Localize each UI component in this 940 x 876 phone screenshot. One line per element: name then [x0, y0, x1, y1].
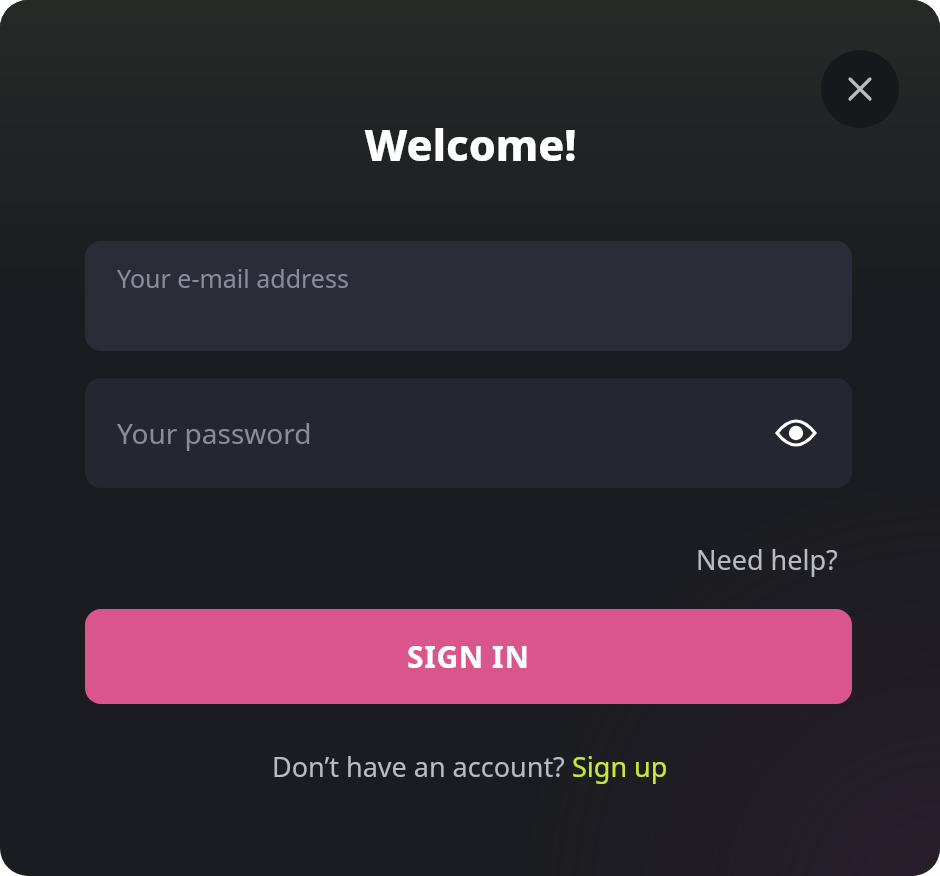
staticText: SIGN IN [407, 636, 530, 677]
button[interactable]: Your e-mail address [85, 241, 852, 351]
staticText: Your e-mail address [117, 261, 349, 295]
button[interactable]: Your password [85, 378, 852, 488]
button[interactable]: Sign up [572, 748, 668, 785]
staticText: Sign up [572, 748, 668, 785]
staticText: Don’t have an account? [272, 748, 572, 785]
staticText: Welcome! [364, 115, 577, 174]
button[interactable]: Need help? [688, 535, 846, 584]
button[interactable]: Close [821, 50, 899, 128]
staticText: Need help? [696, 541, 838, 578]
staticText: Your password [117, 414, 312, 452]
button[interactable]: Show password [762, 399, 830, 467]
button[interactable]: SIGN IN [85, 609, 852, 704]
